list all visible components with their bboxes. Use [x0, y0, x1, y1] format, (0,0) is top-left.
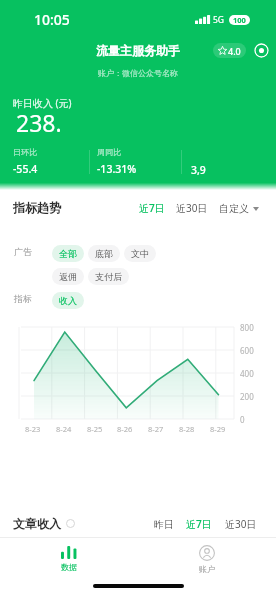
staticText: 8-23	[25, 424, 41, 434]
staticText: 近30日	[176, 201, 208, 215]
staticText: -55.4	[13, 162, 38, 176]
staticText: 指标趋势	[13, 200, 61, 215]
button[interactable]: 自定义	[219, 202, 259, 215]
staticText: 全部	[59, 248, 77, 259]
staticText: 文中	[131, 248, 149, 259]
staticText: 支付后	[95, 271, 122, 282]
staticText: 8-25	[87, 424, 103, 434]
staticText: 400	[240, 368, 254, 379]
staticText: 近30日	[225, 517, 257, 531]
button[interactable]: 文中	[124, 245, 156, 262]
staticText: 广告	[14, 246, 32, 257]
staticText: 文章收入	[13, 516, 61, 531]
staticText: 返佣	[59, 271, 77, 282]
button[interactable]: 收入	[52, 292, 84, 309]
staticText: 100	[233, 15, 246, 25]
staticText: 周同比	[97, 147, 121, 157]
staticText: 8-24	[56, 424, 72, 434]
staticText: 日环比	[13, 147, 37, 157]
staticText: 800	[240, 322, 254, 333]
button[interactable]: 支付后	[88, 268, 129, 285]
button[interactable]: 全部	[52, 245, 84, 262]
button[interactable]: 底部	[88, 245, 120, 262]
staticText: 数据	[61, 562, 77, 572]
staticText: 收入	[59, 295, 77, 306]
staticText: 8-28	[179, 424, 195, 434]
staticText: 0	[240, 414, 245, 425]
button[interactable]: 近7日	[139, 201, 165, 215]
staticText: 4.0	[228, 45, 241, 57]
staticText: 10:05	[34, 10, 70, 29]
button[interactable]: 近30日	[225, 517, 257, 531]
staticText: 8-29	[210, 424, 226, 434]
button[interactable]: 近7日	[186, 517, 212, 531]
staticText: 600	[240, 345, 254, 356]
staticText: 5G	[213, 14, 225, 26]
button[interactable]: More	[253, 43, 269, 58]
staticText: -13.31%	[97, 162, 137, 176]
staticText: 8-26	[117, 424, 133, 434]
staticText: 近7日	[186, 517, 212, 531]
staticText: 账户：微信公众号名称	[98, 68, 178, 78]
button[interactable]: 近30日	[176, 201, 208, 215]
staticText: 指标	[14, 293, 32, 304]
staticText: 账户	[199, 564, 215, 574]
staticText: 近7日	[139, 201, 165, 215]
button[interactable]: 数据	[0, 538, 138, 580]
staticText: 流量主服务助手	[96, 43, 180, 58]
staticText: 底部	[95, 248, 113, 259]
staticText: 昨日	[154, 518, 174, 531]
staticText: 8-27	[148, 424, 164, 434]
staticText: 238.	[16, 107, 62, 138]
staticText: 自定义	[219, 202, 249, 215]
staticText: 3,9	[191, 163, 206, 177]
button[interactable]: 昨日	[154, 518, 174, 531]
staticText: 昨日收入 (元)	[13, 96, 72, 110]
button[interactable]: 账户	[138, 538, 276, 580]
button[interactable]: 4.0	[213, 43, 246, 58]
button[interactable]: 返佣	[52, 268, 84, 285]
staticText: 200	[240, 391, 254, 402]
